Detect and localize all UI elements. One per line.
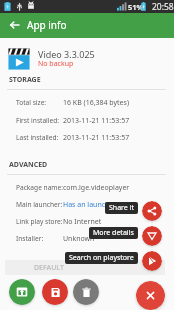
button[interactable]: Installer: — [0, 232, 174, 248]
button[interactable]: Link play store: — [0, 215, 174, 231]
button[interactable]: First installed: — [0, 114, 174, 130]
staticText: Main launcher: — [16, 200, 63, 209]
staticText: Link play store: — [16, 217, 63, 226]
staticText: Installer: — [16, 234, 44, 243]
staticText: Search on playstore — [69, 253, 134, 263]
staticText: First installed: — [16, 116, 60, 125]
button[interactable]: Delete — [73, 279, 99, 305]
button[interactable]: Main launcher: — [0, 198, 174, 214]
button[interactable]: DEFAULT — [5, 260, 165, 275]
button[interactable]: Backup — [42, 279, 68, 305]
button[interactable]: More details — [142, 226, 162, 246]
staticText: 20:58 — [152, 1, 174, 13]
staticText: ADVANCED — [9, 160, 48, 170]
staticText: DEFAULT — [34, 263, 64, 273]
staticText: Last installed: — [16, 133, 59, 142]
button[interactable]: Close — [136, 281, 165, 310]
staticText: 51% — [128, 2, 144, 12]
staticText: 2013-11-21 11:53:57 — [63, 116, 130, 126]
staticText: com.lge.videoplayer — [63, 183, 130, 193]
staticText: Total size: — [16, 98, 47, 107]
staticText: STORAGE — [9, 75, 41, 85]
staticText: No backup — [38, 59, 74, 69]
staticText: Video 3.3.025 — [38, 48, 95, 60]
button[interactable]: Total size: — [0, 96, 174, 112]
staticText: No Internet — [63, 217, 102, 227]
staticText: Has an launcher — [63, 200, 117, 210]
button[interactable]: Search on playstore — [142, 251, 162, 271]
staticText: Unknown — [63, 234, 95, 244]
staticText: 2013-11-21 11:53:57 — [63, 133, 130, 143]
button[interactable]: Last installed: — [0, 131, 174, 147]
button[interactable]: Package name: — [0, 181, 174, 197]
staticText: Share it — [109, 203, 134, 213]
button[interactable]: Back — [4, 15, 24, 35]
staticText: Package name: — [16, 183, 63, 192]
button[interactable]: Share it — [142, 201, 162, 221]
staticText: More details — [93, 228, 134, 238]
staticText: 16 KB (16,384 bytes) — [63, 98, 130, 108]
staticText: App info — [27, 18, 67, 32]
button[interactable]: Install — [9, 279, 35, 305]
